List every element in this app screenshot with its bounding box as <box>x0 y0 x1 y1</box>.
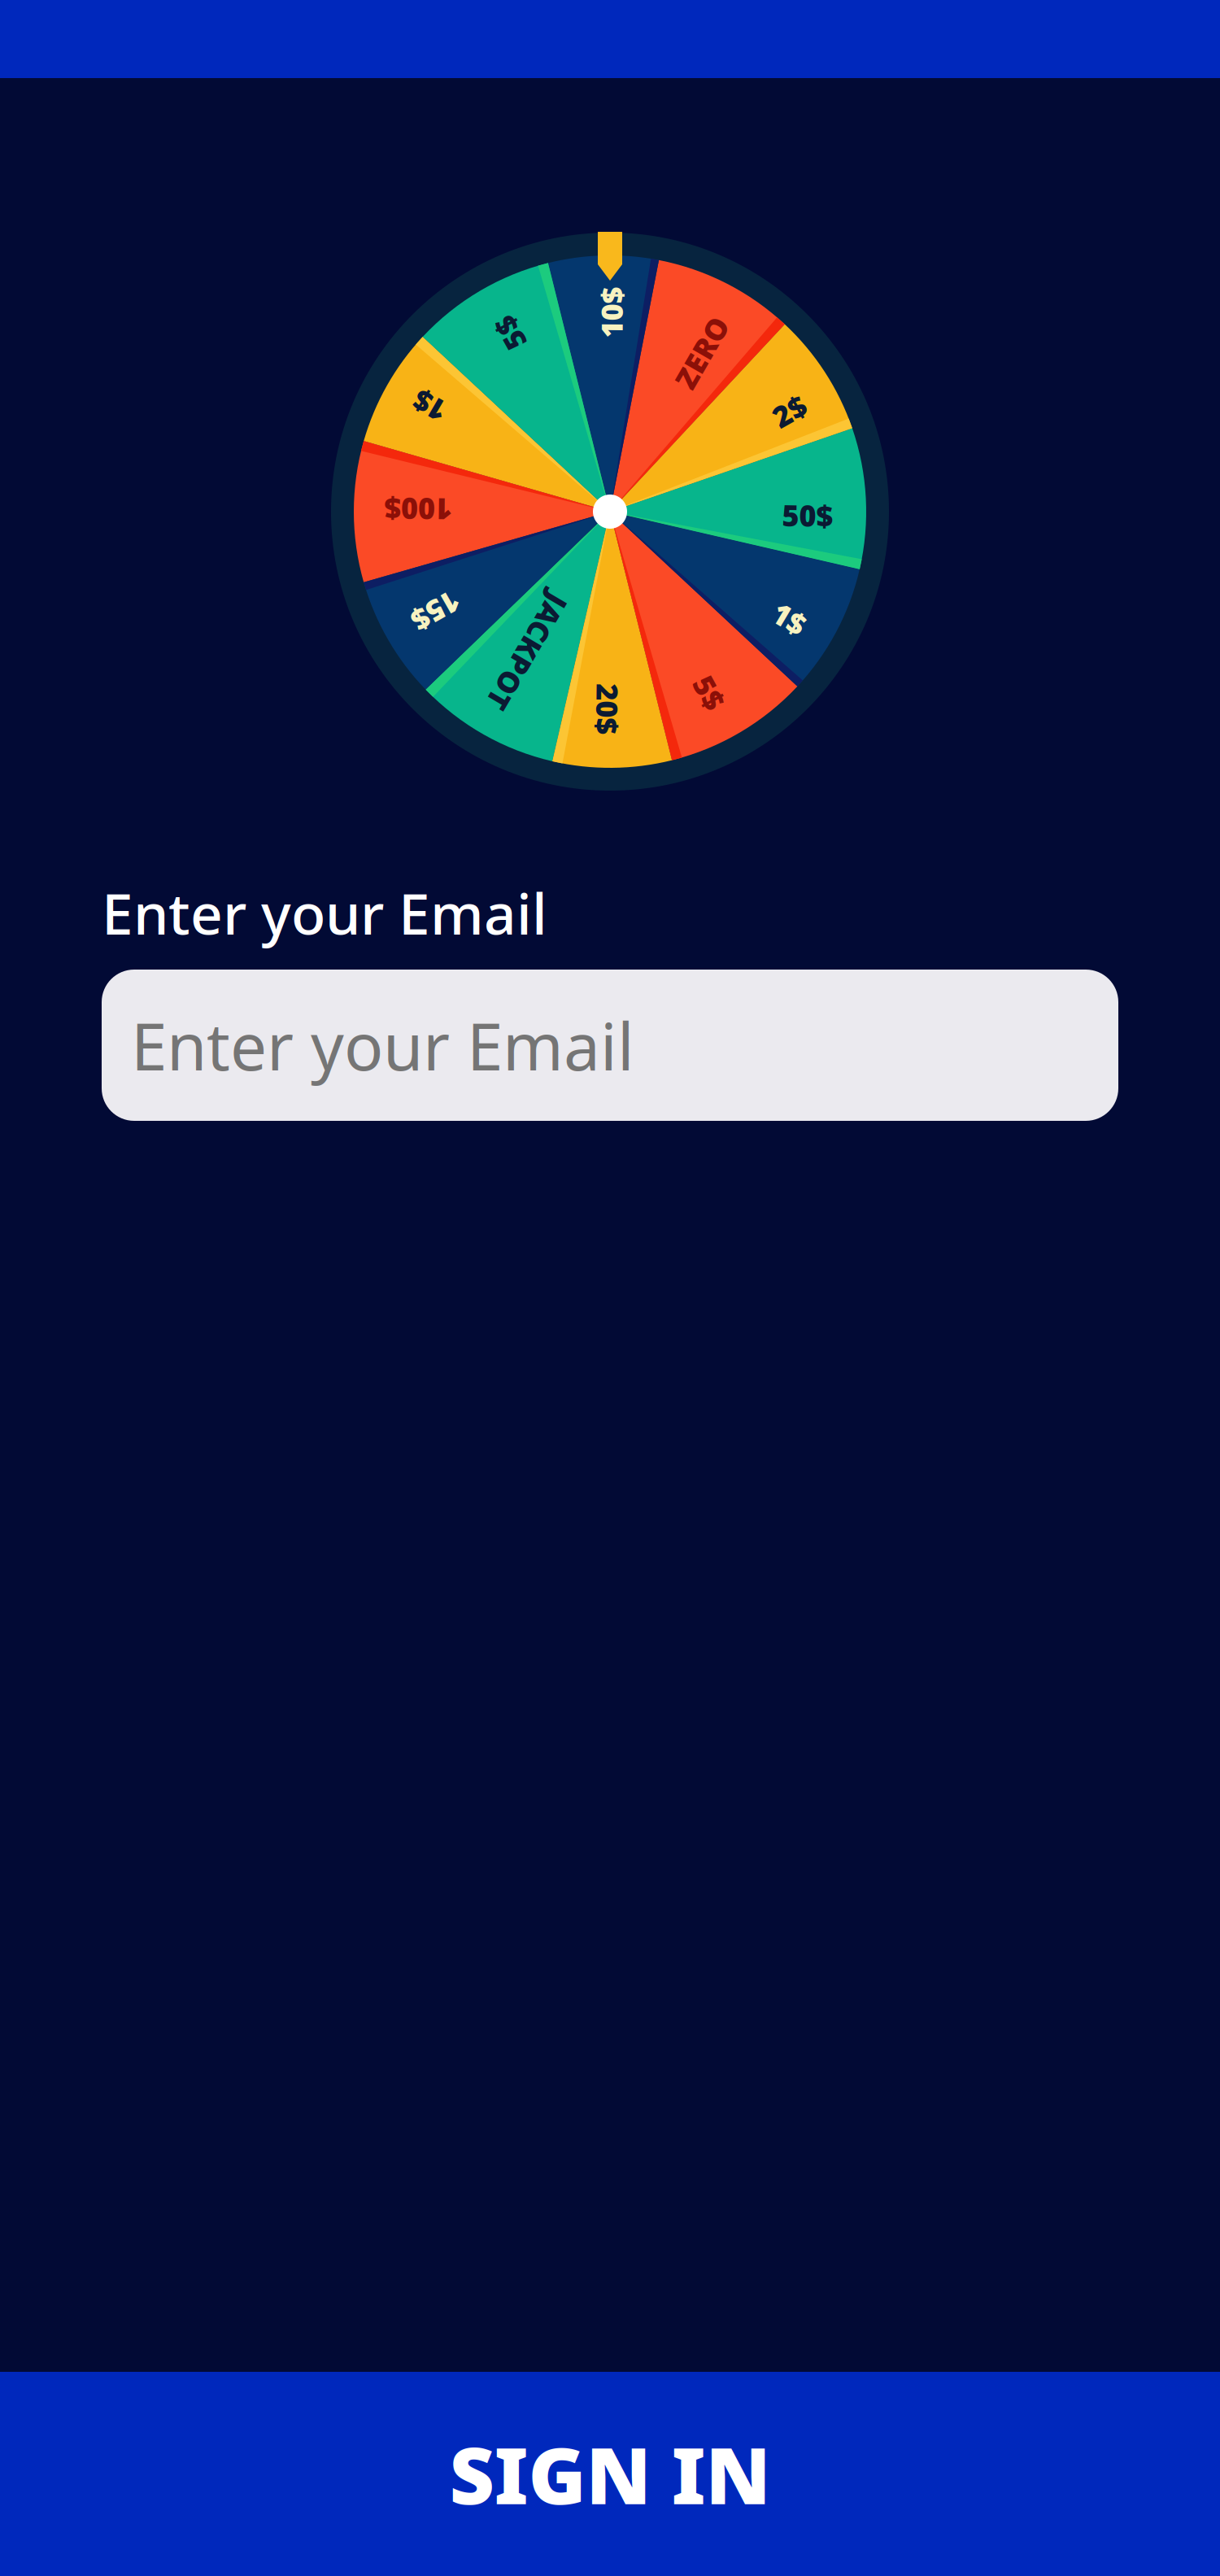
staticText: Enter your Email <box>131 1002 634 1088</box>
staticText: 2$ <box>772 391 807 430</box>
staticText: 5$ <box>692 673 727 712</box>
staticText: 20$ <box>582 690 633 729</box>
staticText: 1$ <box>413 386 447 425</box>
staticText: 1$ <box>773 599 807 638</box>
staticText: 50$ <box>782 496 833 534</box>
staticText: 5$ <box>493 313 527 352</box>
staticText: ZERO <box>663 333 741 372</box>
button[interactable]: Enter your Email <box>102 970 1118 1121</box>
button[interactable]: SIGN IN <box>0 2372 1220 2576</box>
staticText: 100$ <box>384 490 452 529</box>
staticText: SIGN IN <box>449 2422 771 2526</box>
staticText: 15$ <box>410 592 461 631</box>
staticText: Enter your Email <box>102 875 547 950</box>
staticText: JACKPOT <box>463 632 592 671</box>
staticText: 10$ <box>586 293 637 332</box>
